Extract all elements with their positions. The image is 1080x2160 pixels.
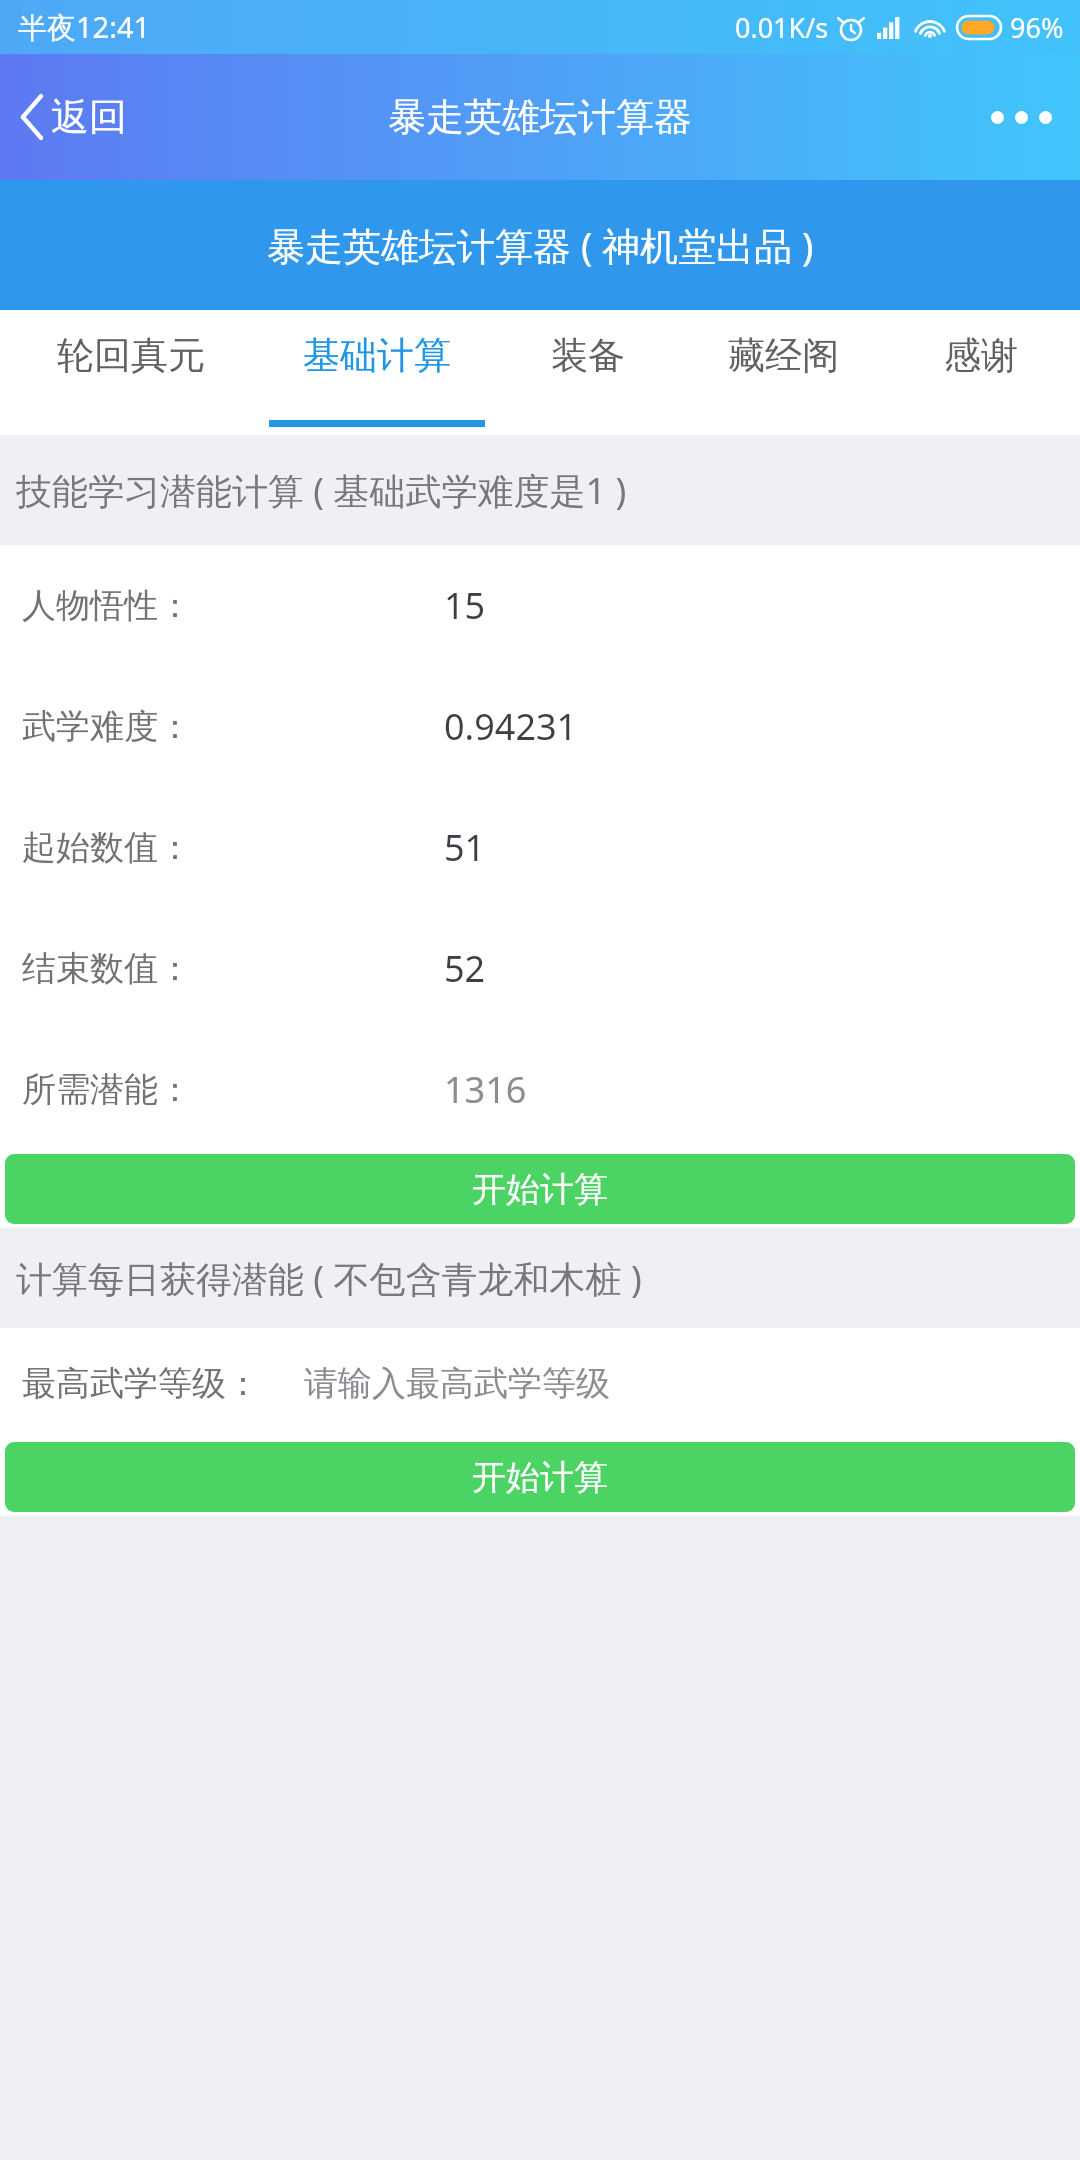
staticText: 结束数值： (22, 947, 222, 990)
staticText: 计算每日获得潜能 ( 不包含青龙和木桩 ) (16, 1254, 642, 1303)
button[interactable]: 开始计算 (5, 1442, 1075, 1512)
staticText: 最高武学等级： (22, 1362, 260, 1405)
staticText: 暴走英雄坛计算器 (388, 93, 692, 141)
staticText: 基础计算 (303, 332, 451, 379)
button[interactable]: 人物悟性： (0, 545, 1080, 666)
button[interactable]: 返回 (12, 81, 135, 153)
staticText: 半夜12:41 (18, 7, 151, 47)
button[interactable]: More options (981, 89, 1062, 146)
staticText: 0.94231 (444, 702, 578, 751)
staticText: 武学难度： (22, 705, 222, 748)
staticText: 15 (444, 581, 486, 630)
button[interactable]: 装备 (499, 310, 677, 435)
button[interactable]: 感谢 (889, 310, 1072, 435)
staticText: 开始计算 (472, 1456, 608, 1499)
staticText: 96% (1010, 9, 1064, 46)
staticText: 藏经阁 (728, 332, 839, 379)
staticText: 52 (444, 944, 486, 993)
button[interactable]: 起始数值： (0, 787, 1080, 908)
staticText: 返回 (51, 93, 127, 141)
staticText: 感谢 (944, 332, 1018, 379)
button[interactable]: 轮回真元 (8, 310, 254, 435)
staticText: 技能学习潜能计算 ( 基础武学难度是1 ) (16, 466, 627, 515)
staticText: 轮回真元 (57, 332, 205, 379)
staticText: 1316 (444, 1065, 527, 1114)
staticText: 起始数值： (22, 826, 222, 869)
staticText: 人物悟性： (22, 584, 222, 627)
button[interactable]: 开始计算 (5, 1154, 1075, 1224)
button[interactable]: 基础计算 (254, 310, 499, 435)
staticText: 请输入最高武学等级 (304, 1362, 610, 1405)
button[interactable]: 藏经阁 (677, 310, 889, 435)
staticText: 51 (444, 823, 486, 872)
staticText: 装备 (551, 332, 625, 379)
staticText: 0.01K/s (735, 9, 829, 46)
staticText: 所需潜能： (22, 1068, 222, 1111)
button[interactable]: 所需潜能： (0, 1029, 1080, 1150)
staticText: 开始计算 (472, 1168, 608, 1211)
button[interactable]: 武学难度： (0, 666, 1080, 787)
staticText: 暴走英雄坛计算器 ( 神机堂出品 ) (267, 219, 814, 271)
button[interactable]: 结束数值： (0, 908, 1080, 1029)
